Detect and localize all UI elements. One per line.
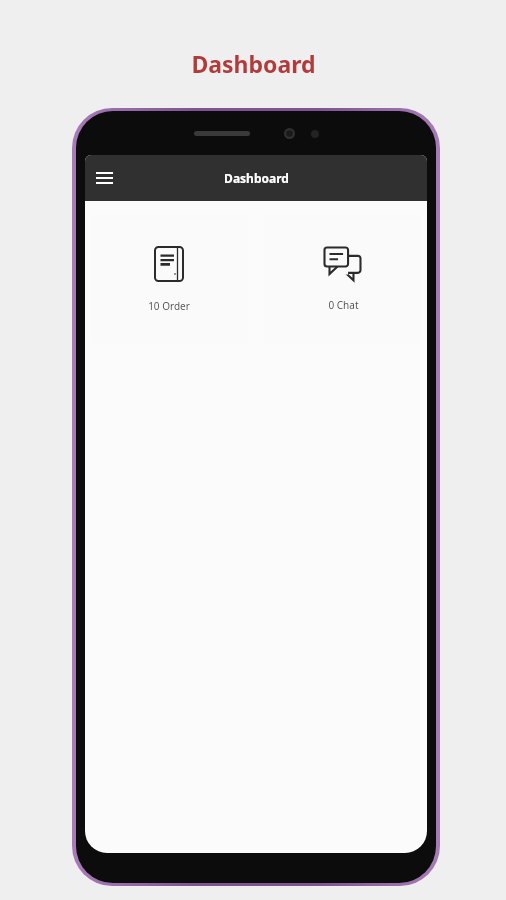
staticText: Dashboard [191, 48, 316, 79]
button[interactable]: 0 Chat [264, 214, 422, 344]
button[interactable]: Open navigation menu [87, 161, 121, 195]
staticText: 10 Order [148, 299, 190, 313]
button[interactable]: 10 Order [90, 214, 248, 344]
staticText: Dashboard [224, 170, 289, 186]
staticText: 0 Chat [328, 298, 359, 312]
